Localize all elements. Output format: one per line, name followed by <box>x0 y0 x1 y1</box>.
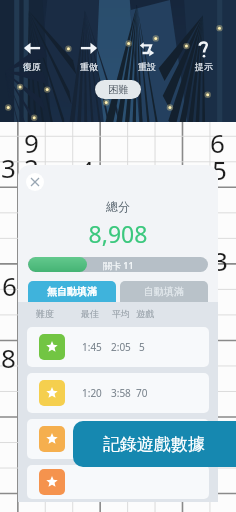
staticText: 自動填滿 <box>144 285 184 298</box>
button[interactable]: 1:20 <box>27 373 209 413</box>
button[interactable]: 自動填滿 <box>120 281 208 302</box>
staticText: 關卡 11 <box>103 259 134 271</box>
button[interactable]: 關閉 <box>26 173 44 191</box>
button[interactable]: 重做 <box>63 38 115 74</box>
staticText: 最佳 <box>81 308 99 319</box>
staticText: 8,908 <box>18 218 218 249</box>
staticText: 難度 <box>36 308 54 319</box>
staticText: 3 <box>1 150 16 185</box>
staticText: 重做 <box>80 61 98 72</box>
staticText: 困難 <box>108 83 128 96</box>
button[interactable]: 重設 <box>121 38 173 74</box>
staticText: 提示 <box>195 61 213 72</box>
staticText: 4 <box>79 152 94 187</box>
staticText: 1:45 <box>82 340 102 354</box>
staticText: 6 <box>210 125 225 160</box>
staticText: 5 <box>212 152 227 187</box>
button[interactable] <box>27 465 209 499</box>
staticText: 復原 <box>23 61 41 72</box>
button[interactable]: 無自動填滿 <box>28 281 116 302</box>
staticText: 2 <box>24 150 39 185</box>
button[interactable]: 1:45 <box>27 327 209 367</box>
staticText: 70 <box>136 386 148 400</box>
staticText: 記錄遊戲數據 <box>103 434 205 455</box>
button[interactable]: 記錄遊戲數據 <box>73 421 236 467</box>
button[interactable]: 提示 <box>178 38 230 74</box>
staticText: 6 <box>2 268 17 303</box>
staticText: 9 <box>24 125 39 160</box>
staticText: 2:05 <box>111 340 131 354</box>
staticText: 8 <box>1 340 16 375</box>
staticText: 遊戲 <box>136 308 154 319</box>
button[interactable]: 復原 <box>6 38 58 74</box>
staticText: 重設 <box>138 61 156 72</box>
staticText: 總分 <box>18 199 218 214</box>
button[interactable]: 困難 <box>95 80 141 99</box>
staticText: 平均 <box>112 308 130 319</box>
staticText: 3:58 <box>111 386 131 400</box>
staticText: 5 <box>139 340 145 354</box>
button[interactable] <box>27 419 209 459</box>
staticText: 無自動填滿 <box>47 285 97 298</box>
staticText: 1:20 <box>82 386 102 400</box>
staticText: 3 <box>213 243 228 278</box>
